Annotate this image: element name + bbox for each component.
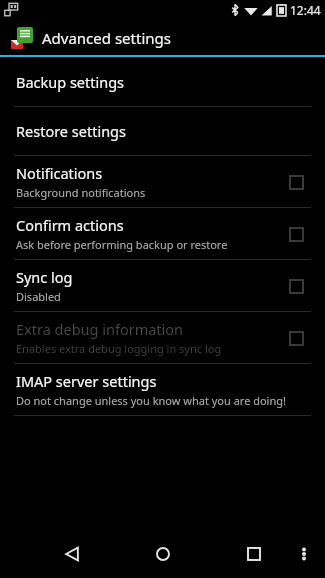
staticText: Enables extra debug logging in sync log (16, 341, 222, 356)
staticText: Extra debug information (16, 319, 184, 339)
staticText: Restore settings (16, 121, 126, 141)
button[interactable]: Back (52, 534, 92, 574)
button[interactable]: Sync log (0, 260, 325, 311)
button[interactable]: IMAP server settings (0, 364, 325, 415)
button[interactable]: Advanced settings (0, 20, 325, 55)
button[interactable]: Notifications (0, 156, 325, 207)
button[interactable]: Confirm actions checkbox (283, 221, 309, 247)
button[interactable]: Sync log checkbox (283, 273, 309, 299)
staticText: Backup settings (16, 72, 125, 92)
button[interactable]: Notifications checkbox (283, 169, 309, 195)
staticText: Confirm actions (16, 215, 124, 235)
staticText: Advanced settings (42, 28, 171, 48)
button[interactable]: Confirm actions (0, 208, 325, 259)
staticText: 12:44 (290, 2, 321, 18)
button[interactable]: Restore settings (0, 107, 325, 155)
staticText: Do not change unless you know what you a… (16, 393, 286, 408)
button[interactable]: Home (143, 534, 183, 574)
staticText: IMAP server settings (16, 371, 157, 391)
staticText: Sync log (16, 267, 73, 287)
button[interactable]: More options (289, 539, 319, 569)
button[interactable]: Extra debug information (0, 312, 325, 363)
staticText: Ask before performing backup or restore (16, 237, 228, 252)
button[interactable]: Extra debug information checkbox (283, 325, 309, 351)
staticText: Disabled (16, 289, 61, 304)
button[interactable]: Backup settings (0, 58, 325, 106)
button[interactable]: Recent apps (234, 534, 274, 574)
staticText: Notifications (16, 163, 103, 183)
staticText: Background notifications (16, 185, 146, 200)
